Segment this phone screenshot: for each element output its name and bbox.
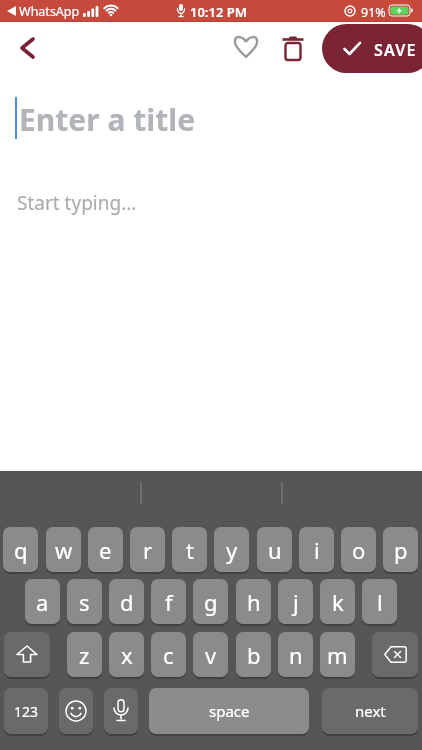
staticText: 91% xyxy=(361,4,386,21)
staticText: k xyxy=(332,587,344,617)
button[interactable] xyxy=(104,688,138,734)
staticText: Start typing... xyxy=(17,190,137,216)
button[interactable]: f xyxy=(151,579,186,624)
button[interactable]: d xyxy=(109,579,144,624)
button[interactable] xyxy=(4,632,50,677)
staticText: v xyxy=(205,640,217,670)
button[interactable]: y xyxy=(214,527,249,572)
button[interactable]: 123 xyxy=(4,688,48,734)
staticText: w xyxy=(55,535,73,565)
button[interactable]: v xyxy=(193,632,228,677)
staticText: WhatsApp xyxy=(19,3,80,20)
staticText: p xyxy=(394,535,408,565)
button[interactable]: o xyxy=(341,527,376,572)
button[interactable]: p xyxy=(383,527,418,572)
staticText: c xyxy=(163,640,174,670)
button[interactable]: k xyxy=(320,579,355,624)
button[interactable] xyxy=(230,32,262,64)
staticText: s xyxy=(79,587,90,617)
staticText: f xyxy=(165,587,173,617)
button[interactable] xyxy=(277,34,309,66)
staticText: n xyxy=(289,640,303,670)
button[interactable]: h xyxy=(236,579,271,624)
button[interactable]: space xyxy=(149,688,309,734)
staticText: i xyxy=(314,535,320,565)
button[interactable]: s xyxy=(67,579,102,624)
staticText: e xyxy=(99,535,112,565)
button[interactable]: m xyxy=(320,632,355,677)
staticText: t xyxy=(186,535,194,565)
staticText: space xyxy=(209,701,250,721)
button[interactable]: q xyxy=(3,527,38,572)
button[interactable]: r xyxy=(130,527,165,572)
staticText: 10:12 PM xyxy=(190,3,247,21)
staticText: u xyxy=(268,535,282,565)
staticText: next xyxy=(355,701,386,721)
button[interactable]: j xyxy=(278,579,313,624)
button[interactable]: w xyxy=(46,527,81,572)
button[interactable]: z xyxy=(67,632,102,677)
staticText: x xyxy=(121,640,133,670)
staticText: j xyxy=(293,587,299,617)
button[interactable]: a xyxy=(25,579,60,624)
staticText: g xyxy=(204,587,218,617)
button[interactable]: next xyxy=(322,688,418,734)
button[interactable]: u xyxy=(257,527,292,572)
button[interactable]: c xyxy=(151,632,186,677)
button[interactable]: b xyxy=(236,632,271,677)
staticText: SAVE xyxy=(374,39,417,61)
staticText: 123 xyxy=(14,702,39,721)
button[interactable]: SAVE xyxy=(322,24,422,73)
staticText: Enter a title xyxy=(19,99,196,140)
button[interactable]: e xyxy=(88,527,123,572)
button[interactable] xyxy=(372,632,418,677)
staticText: r xyxy=(143,535,153,565)
button[interactable]: x xyxy=(109,632,144,677)
staticText: d xyxy=(120,587,134,617)
staticText: h xyxy=(247,587,261,617)
staticText: z xyxy=(79,640,90,670)
staticText: y xyxy=(226,535,238,565)
button[interactable] xyxy=(12,32,44,64)
button[interactable]: n xyxy=(278,632,313,677)
button[interactable]: g xyxy=(193,579,228,624)
staticText: q xyxy=(14,535,28,565)
staticText: m xyxy=(327,640,348,670)
button[interactable]: WhatsApp xyxy=(0,0,422,22)
button[interactable]: l xyxy=(362,579,397,624)
button[interactable] xyxy=(59,688,93,734)
staticText: a xyxy=(36,587,49,617)
button[interactable]: t xyxy=(172,527,207,572)
staticText: o xyxy=(352,535,366,565)
staticText: b xyxy=(247,640,261,670)
button[interactable]: i xyxy=(299,527,334,572)
staticText: l xyxy=(377,587,383,617)
